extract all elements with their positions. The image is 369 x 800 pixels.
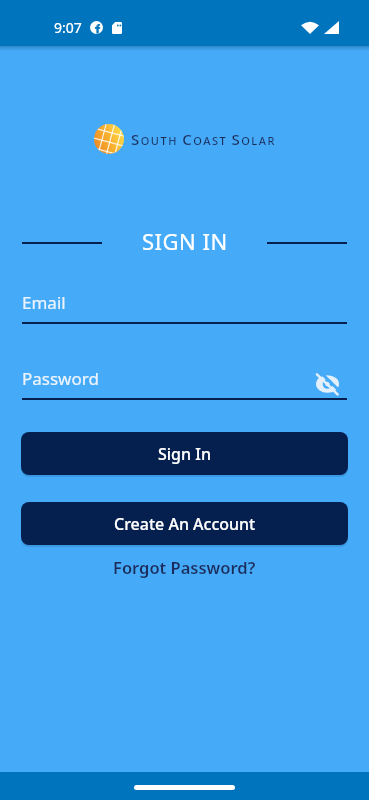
staticText: Password bbox=[22, 367, 99, 390]
staticText: Forgot Password? bbox=[113, 556, 256, 578]
staticText: 9:07 bbox=[54, 18, 82, 37]
button[interactable] bbox=[316, 374, 339, 394]
button[interactable]: Forgot Password? bbox=[105, 552, 264, 582]
staticText: Create An Account bbox=[114, 513, 256, 535]
staticText: Email bbox=[22, 291, 66, 314]
button[interactable]: Sign In bbox=[21, 432, 348, 475]
staticText: SIGN IN bbox=[142, 226, 228, 256]
button[interactable]: Create An Account bbox=[21, 502, 348, 545]
staticText: Sign In bbox=[158, 443, 211, 465]
staticText: SOUTH COAST SOLAR bbox=[131, 129, 276, 149]
